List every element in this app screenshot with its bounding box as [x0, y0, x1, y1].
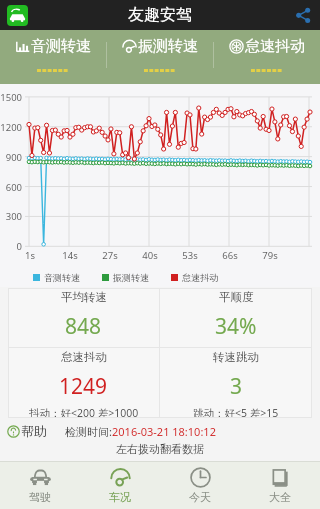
button[interactable]: 大全 — [240, 462, 320, 509]
button[interactable]: 音测转速 — [0, 30, 106, 84]
button[interactable]: 帮助 — [7, 423, 47, 439]
staticText: 40s — [140, 249, 160, 262]
staticText: 驾驶 — [29, 490, 51, 504]
staticText: 大全 — [269, 490, 291, 504]
staticText: 平顺度 — [219, 290, 254, 304]
staticText: 0 — [0, 240, 22, 253]
staticText: 79s — [260, 249, 280, 262]
staticText: 1s — [20, 249, 40, 262]
button[interactable]: 平顺度 — [160, 288, 312, 347]
staticText: 抖动：好<200 差>1000 — [29, 406, 139, 418]
staticText: 友趣安驾 — [128, 5, 192, 25]
button[interactable]: Share — [294, 6, 312, 24]
staticText: 300 — [0, 210, 22, 223]
staticText: 66s — [220, 249, 240, 262]
staticText: 车况 — [109, 490, 131, 504]
staticText: 1249 — [59, 372, 108, 401]
button[interactable]: 驾驶 — [0, 462, 80, 509]
staticText: 振测转速 — [138, 37, 198, 56]
staticText: 1500 — [0, 91, 22, 104]
staticText: 1200 — [0, 121, 22, 134]
staticText: 音测转速 — [31, 37, 91, 56]
staticText: 怠速抖动 — [245, 37, 305, 56]
staticText: 转速跳动 — [213, 350, 259, 364]
staticText: 检测时间: — [65, 424, 112, 439]
staticText: 34% — [215, 312, 257, 341]
button[interactable]: 今天 — [160, 462, 240, 509]
staticText: 怠速抖动 — [61, 350, 107, 364]
staticText: 振测转速 — [113, 272, 149, 283]
button[interactable]: 怠速抖动 — [213, 30, 320, 84]
staticText: 848 — [65, 312, 102, 341]
button[interactable]: 平均转速 — [8, 288, 159, 347]
staticText: 14s — [60, 249, 80, 262]
staticText: 帮助 — [21, 423, 47, 439]
staticText: 3 — [230, 372, 243, 401]
button[interactable]: 转速跳动 — [160, 348, 312, 418]
staticText: 平均转速 — [61, 290, 107, 304]
staticText: 2016-03-21 18:10:12 — [112, 424, 216, 439]
staticText: 跳动：好<5 差>15 — [193, 406, 279, 418]
staticText: 怠速抖动 — [182, 272, 218, 283]
button[interactable]: 怠速抖动 — [8, 348, 159, 418]
staticText: 900 — [0, 151, 22, 164]
button[interactable]: 振测转速 — [106, 30, 213, 84]
button[interactable]: App icon — [7, 5, 28, 26]
staticText: 音测转速 — [44, 272, 80, 283]
button[interactable]: 车况 — [80, 462, 160, 509]
staticText: 左右拨动翻看数据 — [0, 442, 320, 456]
staticText: 今天 — [189, 490, 211, 504]
staticText: 27s — [100, 249, 120, 262]
staticText: 53s — [180, 249, 200, 262]
staticText: 600 — [0, 181, 22, 194]
